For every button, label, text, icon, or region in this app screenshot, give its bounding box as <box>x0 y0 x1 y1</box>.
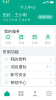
staticText: 9:41 <box>3 0 10 4</box>
button[interactable]: 设置 <box>42 87 56 100</box>
button[interactable]: 审批 <box>15 34 28 45</box>
staticText: 帮助中心 <box>10 80 26 85</box>
staticText: 您好，王小明 <box>3 12 27 17</box>
button[interactable]: 首页 <box>0 87 14 100</box>
staticText: 审批 <box>18 41 24 45</box>
staticText: 3 <box>47 65 49 69</box>
button[interactable]: 账号安全 <box>1 71 54 78</box>
staticText: 账号安全 <box>10 72 26 77</box>
button[interactable]: 工作台 <box>14 87 28 100</box>
staticText: 我的资料 <box>10 57 26 62</box>
button[interactable]: 考勤 <box>1 34 15 45</box>
button[interactable]: 消息通知 <box>1 63 54 70</box>
staticText: 常用功能 <box>3 49 19 54</box>
staticText: 个人中心 <box>20 5 36 10</box>
button[interactable]: 日程 <box>28 34 41 45</box>
button[interactable]: 我的资料 <box>1 56 54 63</box>
staticText: 今日已完成 3 项任务 <box>3 18 31 22</box>
staticText: 考勤 <box>5 41 11 45</box>
staticText: 通讯 <box>45 41 51 45</box>
button[interactable]: 查看详情 <box>37 15 53 19</box>
staticText: 我的服务 <box>4 29 20 34</box>
staticText: 消息通知 <box>10 64 26 69</box>
staticText: 查看详情 <box>39 15 51 19</box>
staticText: 日程 <box>32 41 38 45</box>
button[interactable]: 帮助中心 <box>1 79 54 86</box>
button[interactable]: 通讯录 <box>28 87 42 100</box>
button[interactable]: 通讯 <box>41 34 54 45</box>
